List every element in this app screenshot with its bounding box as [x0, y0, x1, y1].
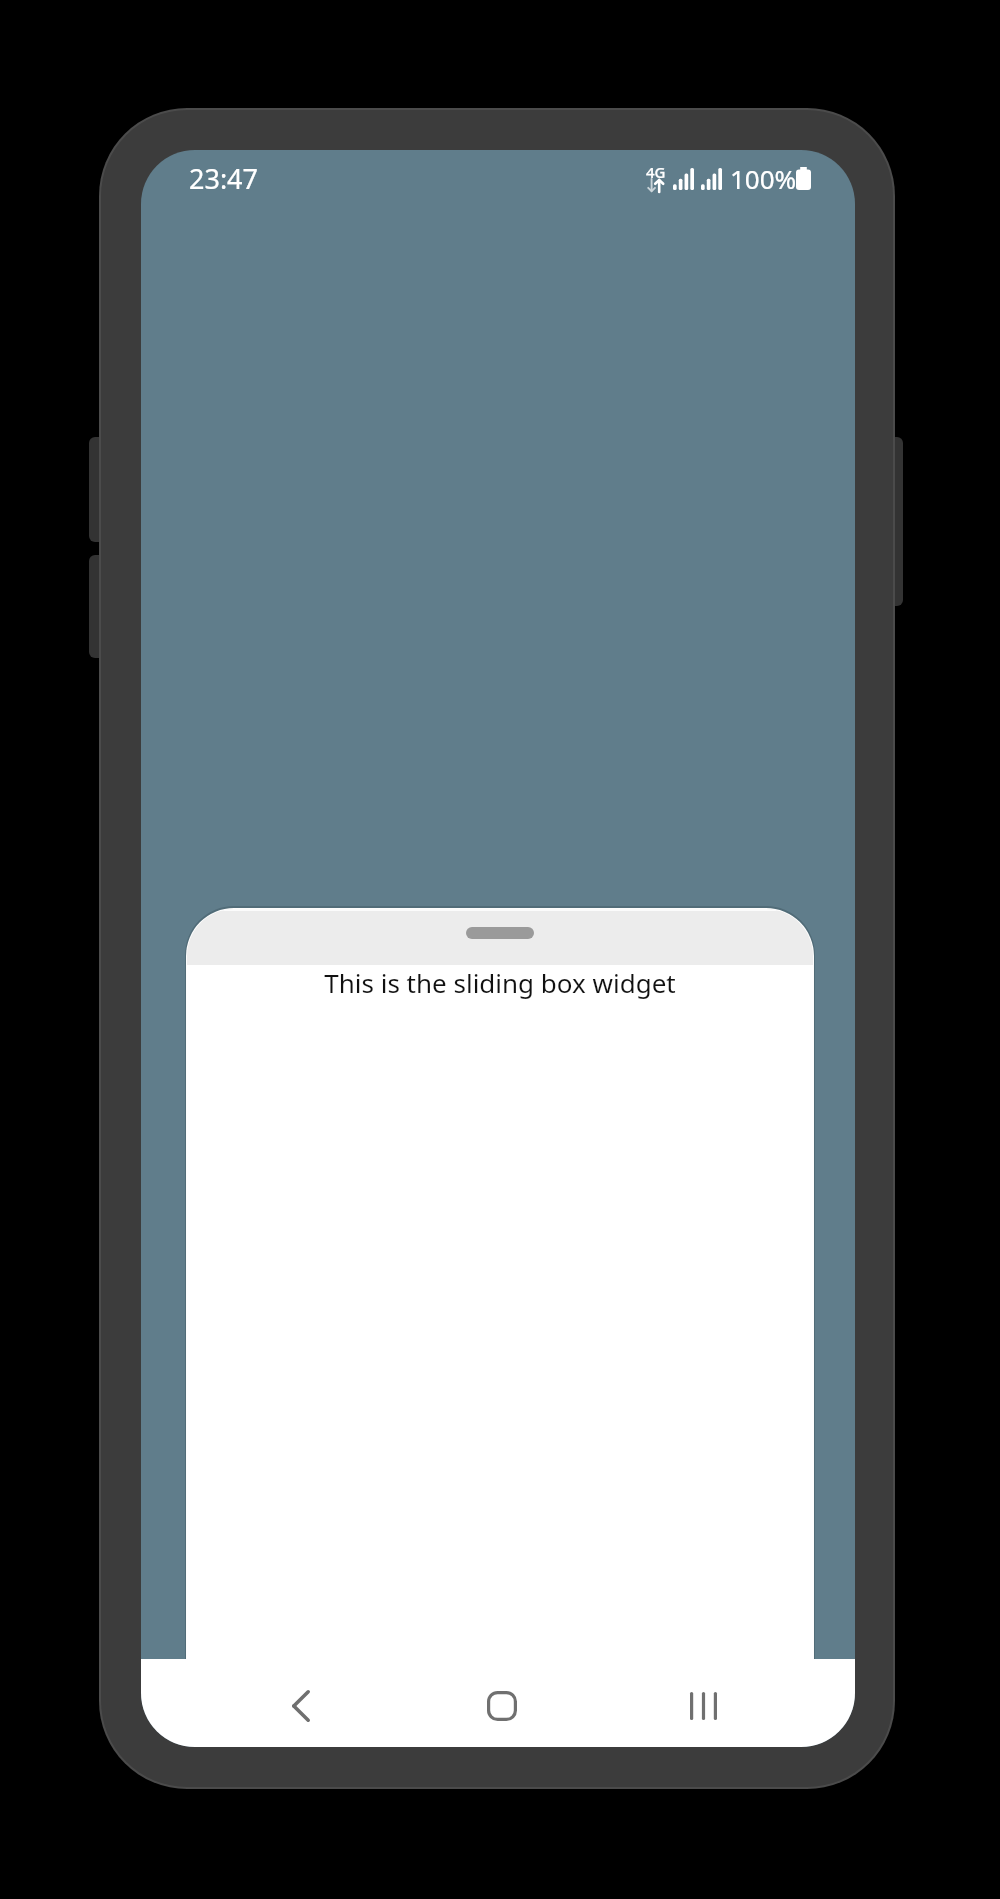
staticText: 23:47 [189, 160, 259, 197]
staticText: This is the sliding box widget [187, 965, 813, 1000]
button[interactable]: This is the sliding box widget [187, 909, 813, 1659]
staticText: 4G [646, 162, 666, 182]
button[interactable]: Back [251, 1662, 351, 1747]
staticText: 100% [730, 161, 797, 196]
button[interactable]: Recent apps [653, 1662, 753, 1747]
button[interactable]: Home [452, 1662, 552, 1747]
